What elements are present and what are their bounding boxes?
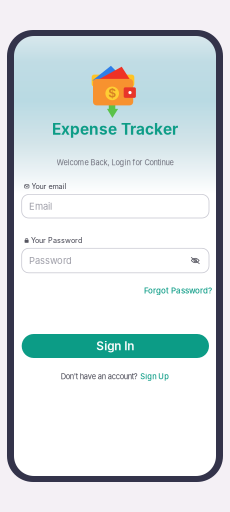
- button[interactable]: Show password: [22, 248, 209, 273]
- staticText: Forgot Password?: [144, 286, 212, 295]
- staticText: Your email: [31, 182, 66, 191]
- staticText: Expense Tracker: [52, 120, 178, 139]
- staticText: Your Password: [31, 236, 82, 245]
- button[interactable]: Forgot Password?: [144, 285, 212, 295]
- staticText: Sign In: [96, 339, 134, 353]
- button[interactable]: Sign Up: [140, 372, 169, 381]
- staticText: Password: [29, 255, 72, 266]
- staticText: Sign Up: [140, 372, 169, 381]
- staticText: $: [108, 86, 116, 100]
- button[interactable]: Sign In: [22, 334, 209, 358]
- staticText: Welcome Back, Login for Continue: [56, 158, 173, 167]
- staticText: Email: [29, 201, 52, 212]
- staticText: Don't have an account?: [61, 372, 138, 381]
